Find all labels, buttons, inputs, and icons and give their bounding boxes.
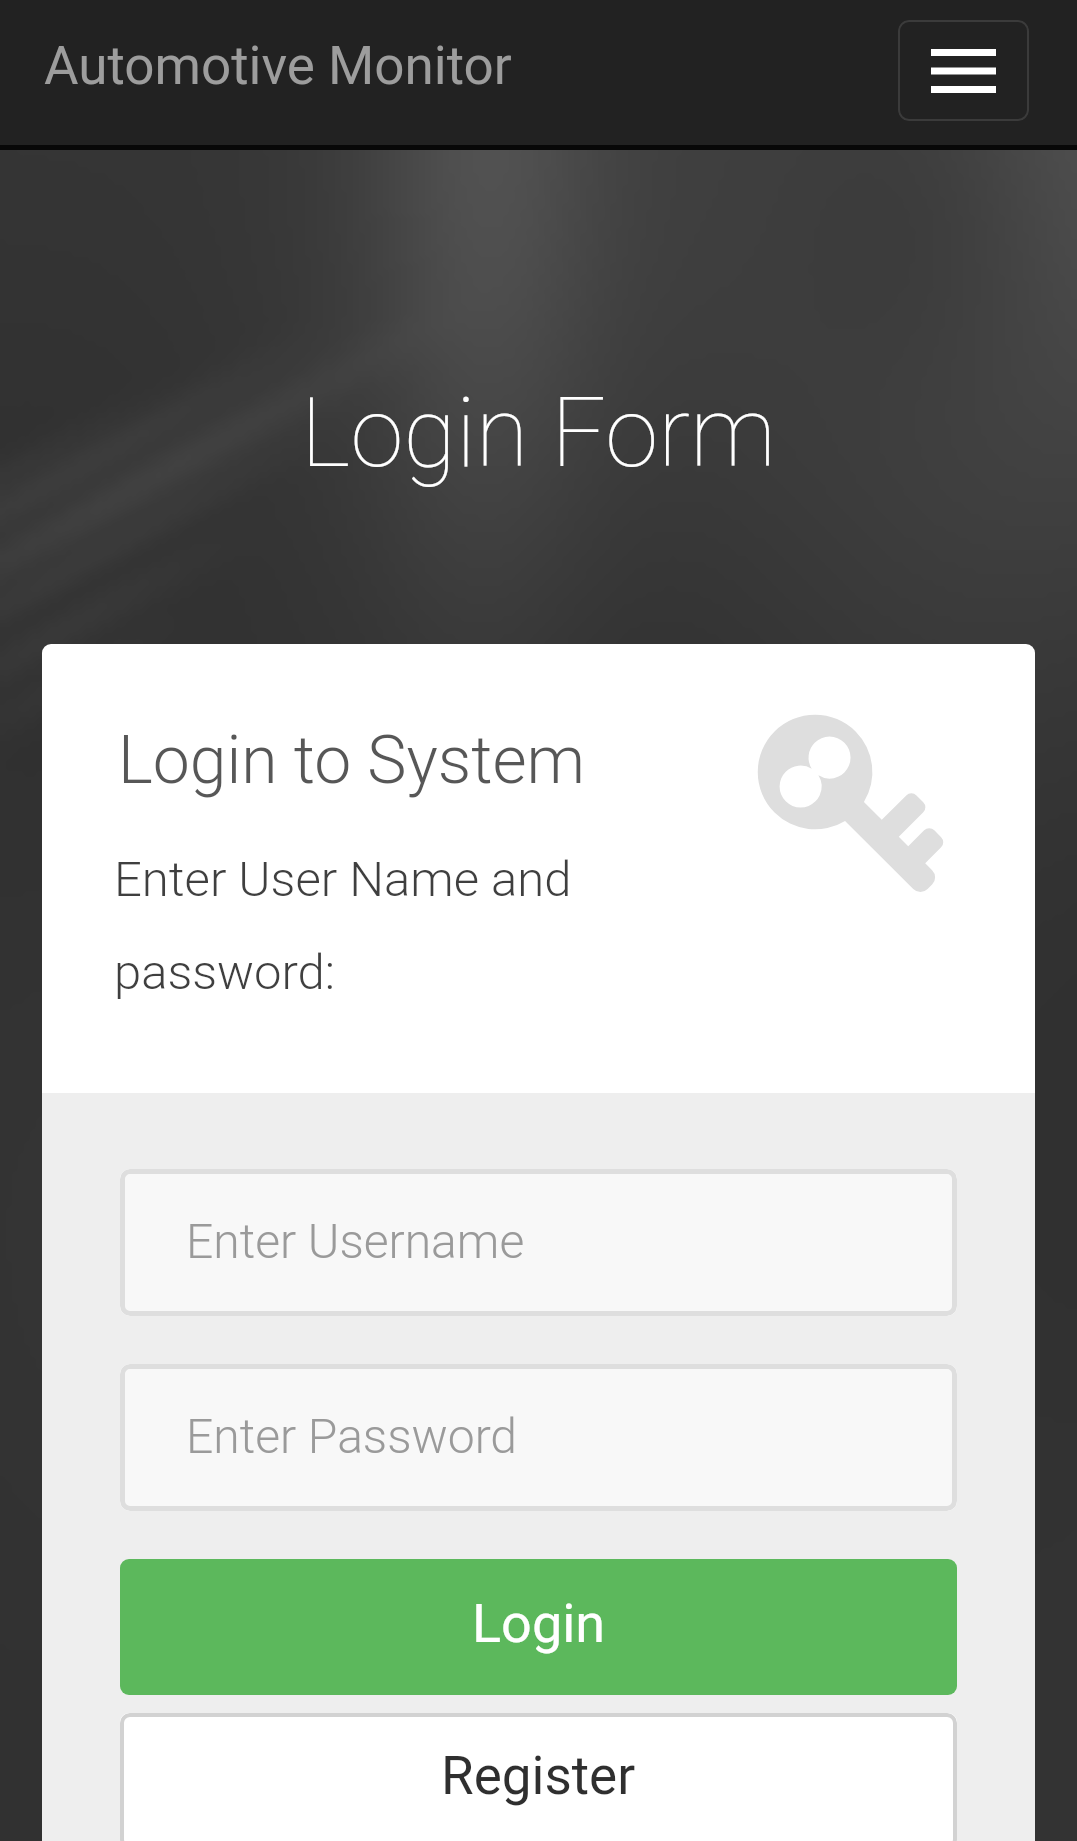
button[interactable]: Register [120,1713,957,1841]
staticText: Login to System [118,722,586,799]
button[interactable]: Open navigation menu [898,20,1029,121]
staticText: Enter Username [186,1213,525,1269]
button[interactable]: Enter Username [120,1169,957,1316]
staticText: Login [472,1592,606,1655]
staticText: Enter User Name and password: [114,851,614,1001]
staticText: Login Form [0,377,1077,490]
button[interactable]: Login [120,1559,957,1695]
button[interactable]: Enter Password [120,1364,957,1511]
staticText: Enter Password [186,1408,518,1464]
staticText: Automotive Monitor [44,35,512,97]
staticText: Register [441,1745,636,1807]
